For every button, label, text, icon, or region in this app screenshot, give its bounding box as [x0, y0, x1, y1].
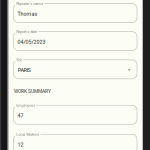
staticText: Employees — [16, 103, 35, 108]
staticText: WORK SUMMARY — [14, 89, 51, 94]
staticText: Thomas — [17, 11, 37, 17]
button[interactable]: 12 — [13, 134, 137, 150]
staticText: PARIS — [17, 67, 30, 73]
staticText: Local Workers — [16, 132, 39, 137]
staticText: 47 — [17, 112, 23, 119]
staticText: Report's date — [16, 29, 37, 34]
staticText: ▾ — [128, 67, 130, 72]
staticText: 04/05/2023 — [17, 39, 45, 45]
button[interactable]: 04/05/2023 — [13, 32, 137, 51]
button[interactable]: PARIS — [13, 60, 137, 79]
staticText: Reporter's name — [16, 1, 43, 6]
staticText: 12 — [17, 141, 23, 148]
button[interactable]: 47 — [13, 105, 137, 124]
staticText: Site — [16, 58, 22, 62]
button[interactable]: Thomas — [13, 4, 137, 23]
